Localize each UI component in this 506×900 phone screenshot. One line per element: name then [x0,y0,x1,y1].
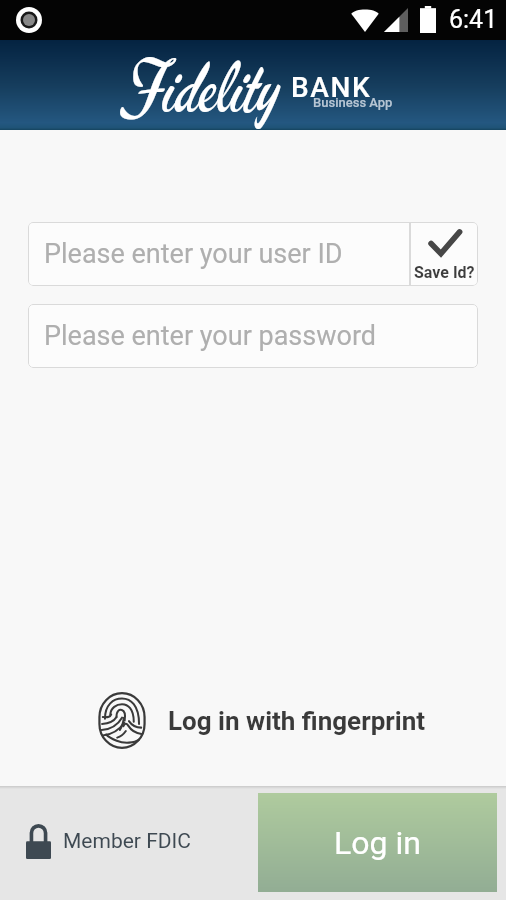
staticText: Fidelity [127,44,282,134]
button[interactable]: Log in with fingerprint [98,692,426,749]
staticText: Please enter your user ID [44,238,343,270]
button[interactable]: Member FDIC [26,824,191,859]
button[interactable]: Please enter your password [28,304,478,368]
staticText: 6:41 [449,5,498,34]
staticText: Member FDIC [63,829,191,854]
staticText: Business App [313,95,393,110]
staticText: Save Id? [414,263,475,282]
staticText: Log in [334,824,421,862]
staticText: Please enter your password [44,320,377,352]
button[interactable]: Save Id [410,222,478,286]
button[interactable]: Please enter your user ID [28,222,410,286]
button[interactable]: Log in [258,793,497,892]
staticText: BANK [291,71,372,104]
staticText: Log in with fingerprint [168,706,426,736]
